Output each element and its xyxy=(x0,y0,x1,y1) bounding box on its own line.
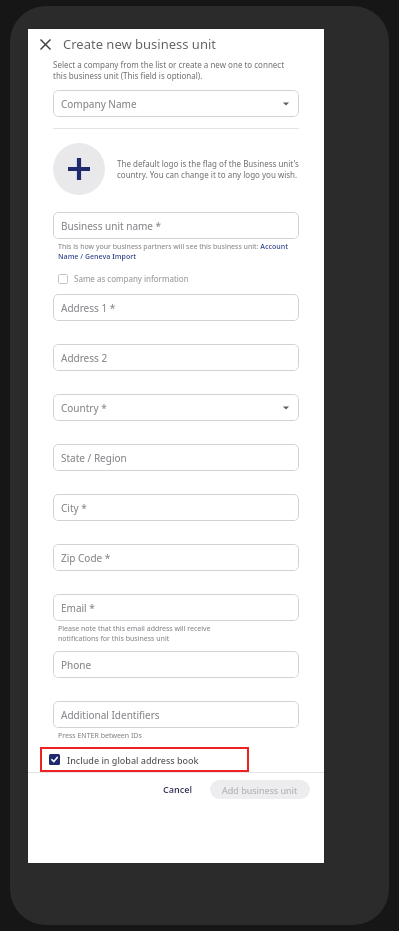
button[interactable]: Include in global address book xyxy=(40,747,249,772)
staticText: The default logo is the flag of the Busi… xyxy=(117,158,299,180)
staticText: This is how your business partners will … xyxy=(58,242,299,262)
button[interactable]: Cancel xyxy=(155,779,201,799)
button[interactable]: Zip Code * xyxy=(53,544,299,571)
staticText: State / Region xyxy=(61,451,127,465)
staticText: Business unit name * xyxy=(61,219,162,233)
staticText: Create new business unit xyxy=(63,35,216,53)
staticText: Please note that this email address will… xyxy=(58,624,211,644)
staticText: Country * xyxy=(61,401,107,415)
staticText: Email * xyxy=(61,601,95,615)
staticText: Address 1 * xyxy=(61,301,116,315)
staticText: City * xyxy=(61,501,87,515)
button[interactable]: Add logo xyxy=(53,143,105,195)
staticText: Phone xyxy=(61,658,92,672)
staticText: Company Name xyxy=(61,97,137,111)
button[interactable]: State / Region xyxy=(53,444,299,471)
button[interactable]: Country * xyxy=(53,394,299,421)
button[interactable]: Phone xyxy=(53,651,299,678)
staticText: Add business unit xyxy=(222,784,298,796)
staticText: Cancel xyxy=(163,783,193,795)
button[interactable]: Additional Identifiers xyxy=(53,701,299,728)
button[interactable]: Address 1 * xyxy=(53,294,299,321)
button[interactable]: Business unit name * xyxy=(53,212,299,239)
staticText: Select a company from the list or create… xyxy=(53,59,299,81)
staticText: Press ENTER between IDs xyxy=(58,731,142,741)
staticText: Same as company information xyxy=(74,273,189,284)
staticText: Include in global address book xyxy=(67,754,199,766)
staticText: Additional Identifiers xyxy=(61,708,160,722)
button[interactable]: Close xyxy=(34,33,56,55)
staticText: Zip Code * xyxy=(61,551,111,565)
button[interactable]: Email * xyxy=(53,594,299,621)
button[interactable]: Add business unit xyxy=(210,780,310,799)
button[interactable]: Company Name xyxy=(53,90,299,117)
staticText: Address 2 xyxy=(61,351,108,365)
button[interactable]: Address 2 xyxy=(53,344,299,371)
button[interactable]: City * xyxy=(53,494,299,521)
button[interactable]: Same as company information xyxy=(53,272,193,285)
